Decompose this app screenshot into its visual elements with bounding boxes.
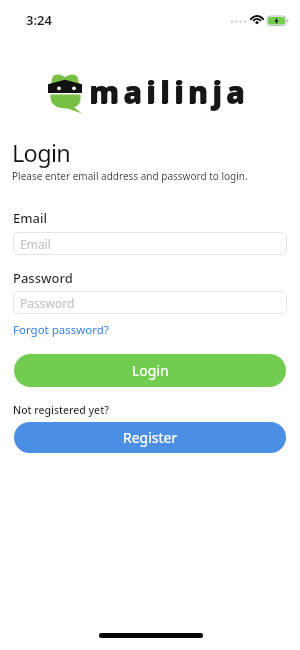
- staticText: mailinja: [90, 71, 250, 112]
- staticText: Password: [13, 269, 73, 287]
- staticText: Email: [13, 209, 48, 227]
- staticText: mailinja: [89, 72, 249, 113]
- staticText: Please enter email address and password …: [12, 169, 248, 183]
- staticText: Login: [132, 361, 169, 380]
- staticText: 3:24: [26, 11, 52, 29]
- staticText: Register: [123, 428, 178, 447]
- staticText: Email: [20, 236, 51, 252]
- button[interactable]: Login: [14, 354, 286, 387]
- button[interactable]: Email: [13, 232, 287, 255]
- staticText: Login: [12, 137, 71, 169]
- button[interactable]: Password: [13, 291, 287, 314]
- staticText: Password: [20, 295, 75, 311]
- button[interactable]: Forgot password?: [13, 322, 109, 338]
- button[interactable]: Register: [14, 422, 286, 453]
- staticText: mailinja: [89, 71, 249, 112]
- staticText: Not registered yet?: [13, 403, 109, 417]
